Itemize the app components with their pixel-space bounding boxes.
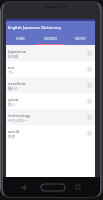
- button[interactable]: Favorite: [85, 81, 93, 89]
- staticText: 良い: [8, 102, 15, 107]
- button[interactable]: Back: [14, 179, 32, 195]
- staticText: 日本語: [8, 54, 19, 59]
- button[interactable]: Favorite: [85, 49, 93, 57]
- staticText: are: [8, 64, 15, 70]
- button[interactable]: Favorite: [85, 65, 93, 73]
- button[interactable]: Recent apps: [69, 179, 87, 195]
- staticText: テクノロジー: [8, 118, 29, 123]
- staticText: 優れた: [8, 86, 19, 91]
- staticText: RECENT: [75, 37, 86, 41]
- button[interactable]: technology: [6, 109, 95, 125]
- button[interactable]: are: [6, 61, 95, 77]
- button[interactable]: Favorite: [85, 129, 93, 137]
- staticText: 世界: [8, 134, 15, 139]
- button[interactable]: good: [6, 93, 95, 109]
- button[interactable]: Favorite: [85, 97, 93, 105]
- button[interactable]: RECENT: [65, 34, 95, 44]
- button[interactable]: excellent: [6, 77, 95, 93]
- staticText: excellent: [8, 80, 26, 86]
- button[interactable]: world: [6, 125, 95, 141]
- staticText: FAVORITE: [44, 37, 57, 41]
- button[interactable]: FAVORITE: [35, 34, 65, 44]
- staticText: technology: [8, 112, 31, 118]
- button[interactable]: Favorite: [85, 113, 93, 121]
- staticText: good: [8, 96, 19, 102]
- staticText: HOME: [16, 37, 25, 41]
- staticText: アー: [8, 70, 15, 75]
- button[interactable]: Japanese: [6, 45, 95, 61]
- staticText: English Japanese Dictionary: [8, 25, 61, 30]
- staticText: Japanese: [8, 48, 27, 54]
- staticText: world: [8, 128, 20, 134]
- button[interactable]: Home: [39, 179, 67, 195]
- button[interactable]: HOME: [6, 34, 35, 44]
